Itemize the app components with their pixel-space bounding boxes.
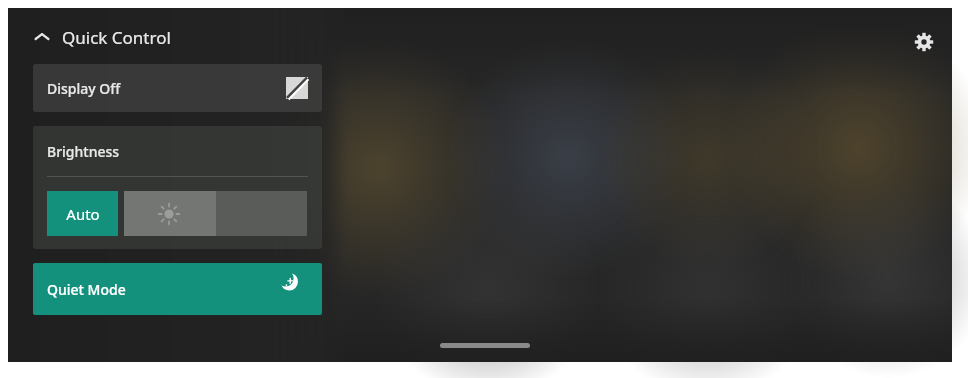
button[interactable]: Auto xyxy=(47,191,118,236)
button[interactable]: Display Off xyxy=(33,64,322,112)
staticText: Quick Control xyxy=(62,26,171,49)
staticText: Brightness xyxy=(47,142,120,161)
button[interactable]: Quick Control xyxy=(32,22,171,52)
button[interactable]: Quiet Mode xyxy=(33,263,322,315)
button[interactable] xyxy=(124,191,307,236)
staticText: Display Off xyxy=(47,79,121,98)
button[interactable]: Settings xyxy=(902,20,946,64)
staticText: Quiet Mode xyxy=(47,280,126,299)
button[interactable]: Brightness xyxy=(33,126,322,176)
staticText: Auto xyxy=(66,204,100,224)
